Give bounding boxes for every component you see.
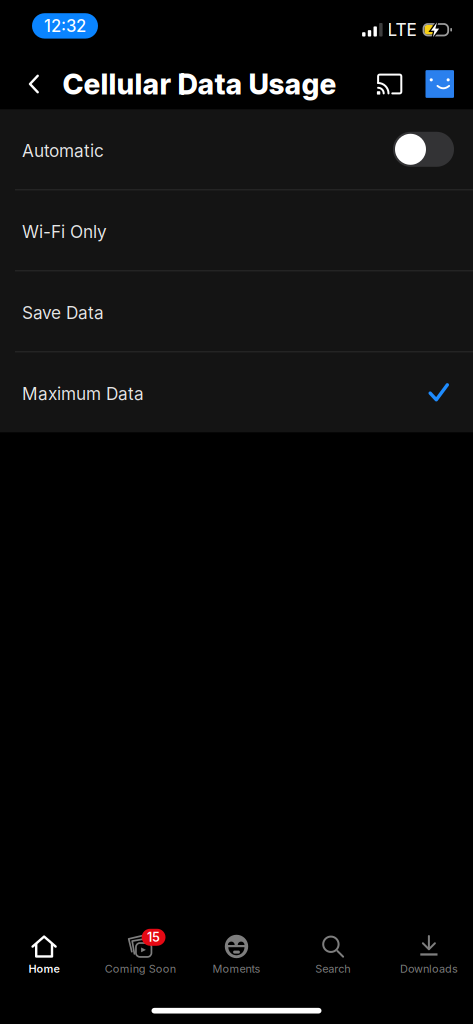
button[interactable]: 15 bbox=[92, 935, 188, 975]
button[interactable]: Save Data bbox=[0, 271, 473, 351]
staticText: LTE bbox=[388, 19, 417, 40]
button[interactable]: Cast to device bbox=[368, 61, 411, 107]
staticText: Cellular Data Usage bbox=[62, 67, 336, 101]
button[interactable]: Home bbox=[0, 935, 92, 975]
button[interactable]: Moments bbox=[188, 935, 285, 975]
staticText: Wi-Fi Only bbox=[22, 221, 107, 242]
staticText: Coming Soon bbox=[105, 962, 176, 975]
button[interactable]: Maximum Data bbox=[0, 352, 473, 432]
staticText: Home bbox=[29, 962, 60, 975]
button[interactable]: Automatic bbox=[0, 109, 473, 189]
staticText: 12:32 bbox=[44, 16, 86, 36]
staticText: Search bbox=[315, 962, 350, 975]
staticText: Moments bbox=[212, 962, 260, 975]
staticText: Automatic bbox=[22, 140, 104, 161]
staticText: 15 bbox=[147, 930, 160, 945]
staticText: Downloads bbox=[400, 962, 458, 975]
staticText: Save Data bbox=[22, 302, 104, 323]
staticText: Maximum Data bbox=[22, 383, 144, 404]
button[interactable]: Profile bbox=[411, 60, 473, 108]
button[interactable]: Search bbox=[285, 935, 381, 975]
button[interactable]: Back bbox=[0, 63, 62, 105]
button[interactable]: Downloads bbox=[381, 935, 473, 975]
button[interactable]: Wi-Fi Only bbox=[0, 190, 473, 270]
